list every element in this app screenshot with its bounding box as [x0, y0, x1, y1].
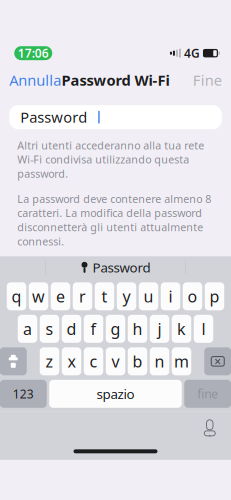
staticText: l — [201, 318, 205, 339]
button[interactable]: fine — [184, 380, 231, 408]
button[interactable]: Delete — [204, 347, 231, 375]
staticText: h — [132, 318, 142, 339]
button[interactable]: b — [128, 347, 147, 375]
staticText: s — [45, 318, 53, 339]
staticText: y — [122, 286, 130, 307]
staticText: o — [187, 286, 197, 307]
staticText: Password — [20, 107, 87, 127]
button[interactable]: h — [128, 315, 147, 343]
staticText: t — [101, 286, 107, 307]
button[interactable]: a — [18, 315, 37, 343]
button[interactable]: r — [73, 282, 92, 310]
staticText: La password deve contenere almeno 8 cara… — [17, 192, 211, 248]
button[interactable]: x — [62, 347, 81, 375]
button[interactable]: Password — [64, 256, 166, 278]
button[interactable]: q — [7, 282, 26, 310]
button[interactable]: Annulla — [0, 66, 73, 94]
button[interactable]: v — [106, 347, 125, 375]
button[interactable]: c — [84, 347, 103, 375]
button[interactable]: e — [51, 282, 70, 310]
button[interactable]: k — [172, 315, 191, 343]
staticText: w — [32, 286, 45, 307]
button[interactable]: z — [40, 347, 59, 375]
button[interactable]: l — [194, 315, 213, 343]
staticText: r — [79, 286, 86, 307]
staticText: g — [110, 318, 120, 339]
staticText: u — [143, 286, 153, 307]
staticText: j — [157, 318, 161, 339]
staticText: p — [209, 286, 219, 307]
staticText: q — [11, 286, 21, 307]
staticText: d — [66, 318, 76, 339]
button[interactable]: u — [139, 282, 158, 310]
button[interactable]: Dictation — [197, 415, 223, 441]
staticText: z — [45, 351, 53, 372]
staticText: i — [168, 286, 172, 307]
button[interactable]: s — [40, 315, 59, 343]
button[interactable]: g — [106, 315, 125, 343]
button[interactable]: m — [172, 347, 191, 375]
staticText: 123 — [13, 386, 34, 402]
button[interactable]: j — [150, 315, 169, 343]
staticText: Password Wi-Fi — [61, 70, 169, 90]
staticText: a — [23, 318, 32, 339]
staticText: c — [89, 351, 97, 372]
button[interactable]: y — [117, 282, 136, 310]
button[interactable]: n — [150, 347, 169, 375]
button[interactable]: 123 — [0, 380, 47, 408]
staticText: m — [174, 351, 189, 372]
staticText: 17:06 — [18, 45, 49, 61]
button[interactable]: Fine — [181, 66, 231, 94]
button[interactable]: o — [183, 282, 202, 310]
staticText: 4G — [184, 45, 200, 61]
button[interactable]: w — [29, 282, 48, 310]
staticText: n — [154, 351, 164, 372]
button[interactable]: Shift — [0, 347, 27, 375]
staticText: b — [132, 351, 142, 372]
staticText: × — [214, 353, 221, 369]
button[interactable]: f — [84, 315, 103, 343]
button[interactable]: p — [205, 282, 224, 310]
staticText: spazio — [96, 385, 134, 403]
staticText: Fine — [193, 70, 222, 90]
staticText: Annulla — [9, 70, 61, 90]
staticText: Password — [92, 258, 150, 276]
staticText: v — [111, 351, 119, 372]
button[interactable]: i — [161, 282, 180, 310]
staticText: Altri utenti accederanno alla tua rete W… — [17, 138, 204, 181]
staticText: k — [177, 318, 186, 339]
staticText: f — [90, 318, 96, 339]
button[interactable]: d — [62, 315, 81, 343]
staticText: e — [56, 286, 65, 307]
staticText: fine — [197, 386, 218, 402]
button[interactable]: spazio — [49, 380, 182, 408]
button[interactable]: Password — [9, 105, 222, 129]
button[interactable]: t — [95, 282, 114, 310]
staticText: x — [67, 351, 75, 372]
